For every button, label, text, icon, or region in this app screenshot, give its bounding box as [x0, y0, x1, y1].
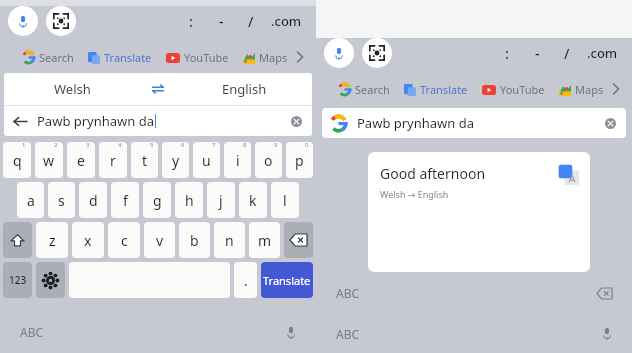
- button[interactable]: Good afternoon: [368, 152, 590, 272]
- staticText: 0: [305, 142, 309, 149]
- button[interactable]: 9: [255, 142, 282, 178]
- button[interactable]: /: [236, 6, 266, 36]
- button[interactable]: 3: [67, 142, 95, 178]
- button[interactable]: :: [492, 38, 522, 68]
- button[interactable]: ABC: [332, 281, 364, 305]
- button[interactable]: Settings: [36, 262, 65, 298]
- staticText: f: [123, 191, 128, 210]
- staticText: r: [110, 151, 116, 170]
- button[interactable]: Backspace: [593, 284, 616, 303]
- button[interactable]: Voice search: [8, 6, 38, 36]
- button[interactable]: 8: [224, 142, 251, 178]
- button[interactable]: m: [249, 222, 280, 258]
- button[interactable]: n: [214, 222, 245, 258]
- button[interactable]: ABC: [16, 320, 48, 344]
- staticText: 4: [118, 142, 122, 149]
- button[interactable]: YouTube: [166, 50, 243, 65]
- button[interactable]: h: [175, 182, 203, 218]
- button[interactable]: .: [234, 262, 257, 298]
- staticText: :: [505, 44, 509, 63]
- button[interactable]: Backspace: [284, 222, 313, 258]
- button[interactable]: Voice input: [598, 323, 616, 344]
- staticText: 7: [212, 142, 216, 149]
- staticText: Translate: [420, 82, 468, 97]
- button[interactable]: /: [552, 38, 582, 68]
- button[interactable]: -: [206, 6, 236, 36]
- button[interactable]: Pawb prynhawn da: [322, 108, 626, 138]
- button[interactable]: 4: [99, 142, 127, 178]
- button[interactable]: Google Lens: [362, 38, 392, 68]
- button[interactable]: s: [48, 182, 75, 218]
- button[interactable]: YouTube: [482, 82, 559, 97]
- button[interactable]: d: [79, 182, 107, 218]
- button[interactable]: Shift: [3, 222, 32, 258]
- button[interactable]: Clear: [291, 116, 302, 127]
- staticText: YouTube: [184, 50, 229, 65]
- button[interactable]: Search: [22, 50, 88, 65]
- staticText: :: [189, 12, 193, 31]
- button[interactable]: More: [290, 47, 310, 67]
- button[interactable]: 5: [131, 142, 158, 178]
- button[interactable]: b: [179, 222, 210, 258]
- button[interactable]: g: [143, 182, 171, 218]
- staticText: Translate: [263, 273, 311, 288]
- button[interactable]: Welsh: [4, 73, 140, 105]
- button[interactable]: 2: [35, 142, 63, 178]
- button[interactable]: f: [111, 182, 139, 218]
- staticText: Search: [355, 82, 390, 97]
- button[interactable]: Translate: [404, 82, 482, 97]
- button[interactable]: More: [606, 79, 626, 99]
- staticText: Maps: [259, 50, 288, 65]
- button[interactable]: 1: [3, 142, 31, 178]
- staticText: b: [190, 231, 199, 250]
- button[interactable]: 123: [3, 262, 32, 298]
- button[interactable]: x: [72, 222, 104, 258]
- button[interactable]: English: [176, 73, 312, 105]
- staticText: English: [222, 80, 267, 98]
- button[interactable]: Translate: [88, 50, 166, 65]
- button[interactable]: 6: [162, 142, 189, 178]
- staticText: Maps: [575, 82, 604, 97]
- staticText: l: [283, 191, 287, 210]
- staticText: Welsh → English: [380, 188, 449, 200]
- button[interactable]: Maps: [559, 82, 604, 97]
- button[interactable]: Clear: [605, 118, 616, 129]
- staticText: /: [248, 12, 254, 31]
- button[interactable]: Voice input: [282, 322, 300, 343]
- staticText: Search: [39, 50, 74, 65]
- staticText: Pawb prynhawn da: [37, 112, 155, 130]
- staticText: ABC: [336, 326, 360, 342]
- button[interactable]: Swap languages: [140, 73, 176, 105]
- staticText: d: [89, 191, 98, 210]
- button[interactable]: -: [522, 38, 552, 68]
- button[interactable]: Search: [338, 82, 404, 97]
- staticText: 8: [243, 142, 247, 149]
- button[interactable]: ABC: [332, 322, 364, 346]
- other: Back: [14, 115, 27, 128]
- button[interactable]: .com: [582, 38, 622, 68]
- button[interactable]: .com: [266, 6, 306, 36]
- button[interactable]: 7: [193, 142, 220, 178]
- staticText: m: [258, 231, 272, 250]
- staticText: YouTube: [500, 82, 545, 97]
- button[interactable]: a: [17, 182, 44, 218]
- button[interactable]: l: [271, 182, 299, 218]
- button[interactable]: Maps: [243, 50, 288, 65]
- button[interactable]: j: [207, 182, 235, 218]
- staticText: .com: [587, 44, 618, 62]
- staticText: 3: [86, 142, 90, 149]
- button[interactable]: z: [36, 222, 68, 258]
- staticText: -: [535, 44, 540, 63]
- button[interactable]: Translate: [261, 262, 313, 298]
- button[interactable]: v: [144, 222, 175, 258]
- button[interactable]: 0: [286, 142, 313, 178]
- button[interactable]: :: [176, 6, 206, 36]
- staticText: ABC: [336, 285, 360, 301]
- button[interactable]: Google Lens: [46, 6, 76, 36]
- staticText: i: [236, 151, 240, 170]
- button[interactable]: Back: [4, 106, 312, 136]
- button[interactable]: k: [239, 182, 267, 218]
- button[interactable]: Voice search: [324, 38, 354, 68]
- button[interactable]: c: [108, 222, 140, 258]
